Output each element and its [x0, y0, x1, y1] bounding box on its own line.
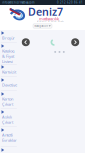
button[interactable]: Antetli Evraklar: [0, 127, 18, 147]
button[interactable]: Next slide: [71, 38, 79, 46]
staticText: Davetiye: [2, 82, 17, 87]
button[interactable]: Katalog & Fiyat Listesi: [0, 43, 18, 64]
button[interactable]: Karton Çıkart: [0, 91, 18, 109]
button[interactable]: Davetiye: [0, 77, 18, 91]
staticText: Katalog & Fiyat Listesi: [2, 48, 14, 64]
staticText: Askılı Çıkart: [2, 114, 13, 125]
button[interactable]: info@deniz7matbaa.com: [2, 1, 34, 4]
button[interactable]: 0 212 620 86 41: [57, 1, 83, 4]
staticText: Kaliteli & Hızlı Baskı: [37, 21, 64, 24]
button[interactable]: Kartvizit: [0, 64, 18, 77]
staticText: Broşür: [2, 35, 15, 40]
button[interactable]: Askılı Çıkart: [0, 109, 18, 127]
staticText: Navigation: [34, 24, 48, 28]
staticText: matbaacılık: [39, 16, 59, 21]
button[interactable]: Navigation: [33, 24, 52, 28]
staticText: Antetli Evraklar: [2, 132, 17, 143]
staticText: 0 212 620 86 41: [57, 1, 83, 4]
staticText: Karton Çıkart: [2, 96, 13, 107]
staticText: Kartvizit: [2, 69, 16, 74]
button[interactable]: Broşür: [0, 30, 18, 43]
button[interactable]: Previous slide: [22, 38, 30, 46]
staticText: Deniz7: [28, 5, 63, 19]
staticText: info@deniz7matbaa.com: [2, 1, 34, 4]
button[interactable]: Deniz7: [0, 5, 64, 24]
